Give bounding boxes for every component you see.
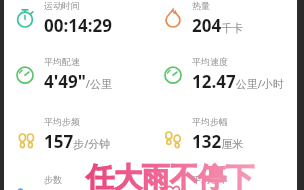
staticText: 平均配速: [44, 56, 80, 67]
staticText: 平均步幅: [192, 116, 228, 127]
button[interactable]: 热量: [160, 0, 300, 44]
button[interactable]: 平均步幅: [160, 108, 300, 160]
staticText: 4'49"/公里: [44, 70, 112, 93]
button[interactable]: 运动时间: [12, 0, 152, 44]
button[interactable]: 平均步频: [12, 108, 152, 160]
staticText: 运动时间: [44, 0, 80, 11]
staticText: 00:14:29: [44, 14, 112, 37]
staticText: 12.47公里/小时: [192, 70, 284, 93]
staticText: 157步/分钟: [44, 130, 111, 153]
staticText: 2,098步: [44, 188, 99, 190]
staticText: 平均速度: [192, 56, 228, 67]
button[interactable]: 平均配速: [12, 48, 152, 100]
staticText: 平均步频: [44, 116, 80, 127]
staticText: 步数: [44, 174, 62, 185]
staticText: 204千卡: [192, 14, 244, 37]
button[interactable]: 步数: [12, 166, 152, 190]
staticText: 热量: [192, 0, 210, 11]
button[interactable]: 平均速度: [160, 48, 300, 100]
button[interactable]: 平均心率: [160, 166, 300, 190]
staticText: 任大雨不停下: [86, 160, 254, 190]
staticText: 132厘米: [192, 130, 244, 153]
staticText: 148次/分钟: [192, 188, 259, 190]
staticText: 平均心率: [192, 174, 228, 185]
